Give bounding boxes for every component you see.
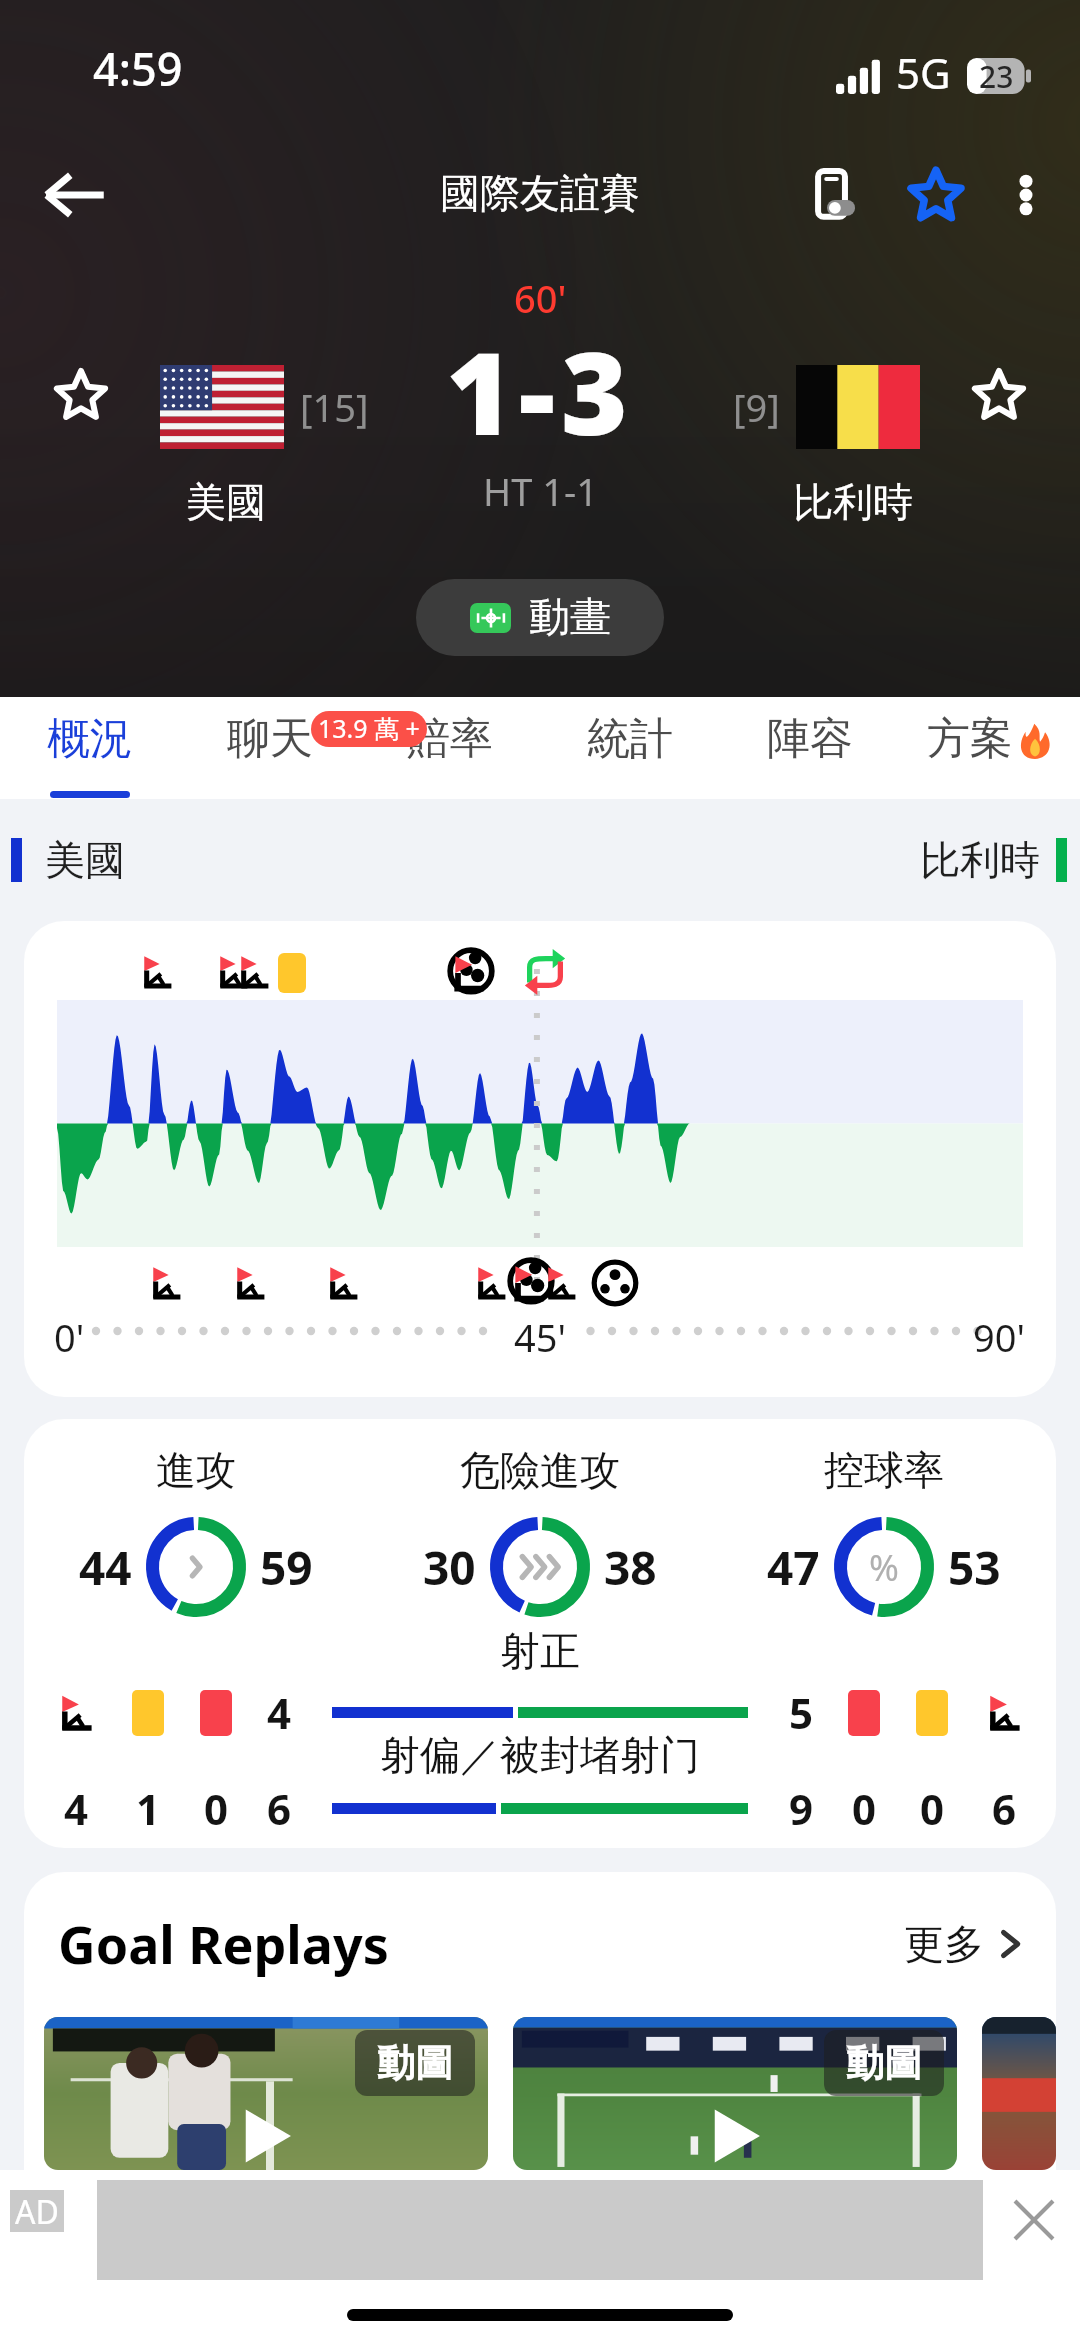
staticText: 90' bbox=[973, 1311, 1026, 1363]
button[interactable]: 聊天 bbox=[180, 697, 360, 799]
staticText: 4 bbox=[50, 1780, 102, 1837]
staticText: 13.9 萬 + bbox=[318, 711, 420, 745]
staticText: 45' bbox=[514, 1311, 567, 1363]
staticText: 53 bbox=[948, 1536, 1001, 1599]
staticText: Goal Replays bbox=[58, 1908, 389, 1979]
staticText: 5G bbox=[896, 44, 951, 101]
staticText: 59 bbox=[260, 1536, 313, 1599]
staticText: 6 bbox=[262, 1780, 296, 1837]
button[interactable]: 動圖 bbox=[513, 2017, 957, 2170]
staticText: 30 bbox=[423, 1536, 476, 1599]
staticText: 方案 bbox=[927, 712, 1013, 766]
staticText: 進攻 bbox=[156, 1445, 236, 1495]
staticText: 9 bbox=[784, 1780, 818, 1837]
staticText: 美國 bbox=[45, 835, 125, 885]
staticText: HT 1-1 bbox=[483, 465, 598, 517]
button[interactable]: Close ad bbox=[1002, 2188, 1066, 2252]
staticText: 射正 bbox=[24, 1626, 1056, 1676]
staticText: 動圖 bbox=[377, 2039, 453, 2087]
staticText: [15] bbox=[300, 381, 369, 433]
staticText: 控球率 bbox=[824, 1445, 944, 1495]
staticText: 更多 bbox=[904, 1919, 984, 1969]
staticText: 比利時 bbox=[793, 477, 913, 527]
staticText: % bbox=[869, 1543, 899, 1592]
staticText: 比利時 bbox=[920, 835, 1040, 885]
staticText: 聊天 bbox=[227, 712, 313, 766]
staticText: 賠率 bbox=[407, 712, 493, 766]
staticText: 0 bbox=[200, 1780, 232, 1837]
button[interactable]: More options bbox=[986, 155, 1066, 235]
staticText: 陣容 bbox=[767, 712, 853, 766]
staticText: 4 bbox=[262, 1684, 296, 1741]
staticText: 概況 bbox=[47, 712, 133, 766]
button[interactable] bbox=[982, 2017, 1056, 2170]
staticText: 1 bbox=[132, 1780, 164, 1837]
staticText: 5 bbox=[784, 1684, 818, 1741]
staticText: 44 bbox=[79, 1536, 132, 1599]
staticText: 統計 bbox=[587, 712, 673, 766]
staticText: 1-3 bbox=[446, 313, 634, 468]
button[interactable]: 陣容 bbox=[720, 697, 900, 799]
staticText: 23 bbox=[979, 56, 1014, 92]
staticText: 0 bbox=[916, 1780, 948, 1837]
staticText: 0 bbox=[848, 1780, 880, 1837]
staticText: 60' bbox=[514, 272, 567, 324]
button[interactable]: 動圖 bbox=[44, 2017, 488, 2170]
button[interactable]: 更多 bbox=[904, 1919, 1028, 1969]
staticText: 動畫 bbox=[529, 592, 611, 644]
staticText: 動圖 bbox=[846, 2039, 922, 2087]
button[interactable]: 動畫 bbox=[416, 579, 664, 656]
staticText: 美國 bbox=[186, 477, 266, 527]
button[interactable]: Favourite match bbox=[886, 145, 986, 245]
staticText: 0' bbox=[54, 1311, 85, 1363]
button[interactable]: 賠率 bbox=[360, 697, 540, 799]
staticText: 6 bbox=[978, 1780, 1030, 1837]
staticText: 47 bbox=[767, 1536, 820, 1599]
button[interactable]: 統計 bbox=[540, 697, 720, 799]
staticText: 38 bbox=[604, 1536, 657, 1599]
button[interactable]: Favourite USA bbox=[42, 356, 120, 434]
button[interactable]: 方案 bbox=[900, 697, 1080, 799]
staticText: 4:59 bbox=[93, 38, 183, 99]
staticText: 射偏／被封堵射门 bbox=[24, 1730, 1056, 1780]
button[interactable]: Back bbox=[24, 145, 124, 245]
staticText: [9] bbox=[733, 381, 780, 433]
button[interactable]: Notification settings bbox=[786, 145, 886, 245]
staticText: 危險進攻 bbox=[460, 1445, 620, 1495]
staticText: 國際友誼賽 bbox=[440, 168, 640, 218]
staticText: AD bbox=[15, 2190, 59, 2232]
button[interactable]: 概況 bbox=[0, 697, 180, 799]
button[interactable]: Favourite Belgium bbox=[960, 356, 1038, 434]
